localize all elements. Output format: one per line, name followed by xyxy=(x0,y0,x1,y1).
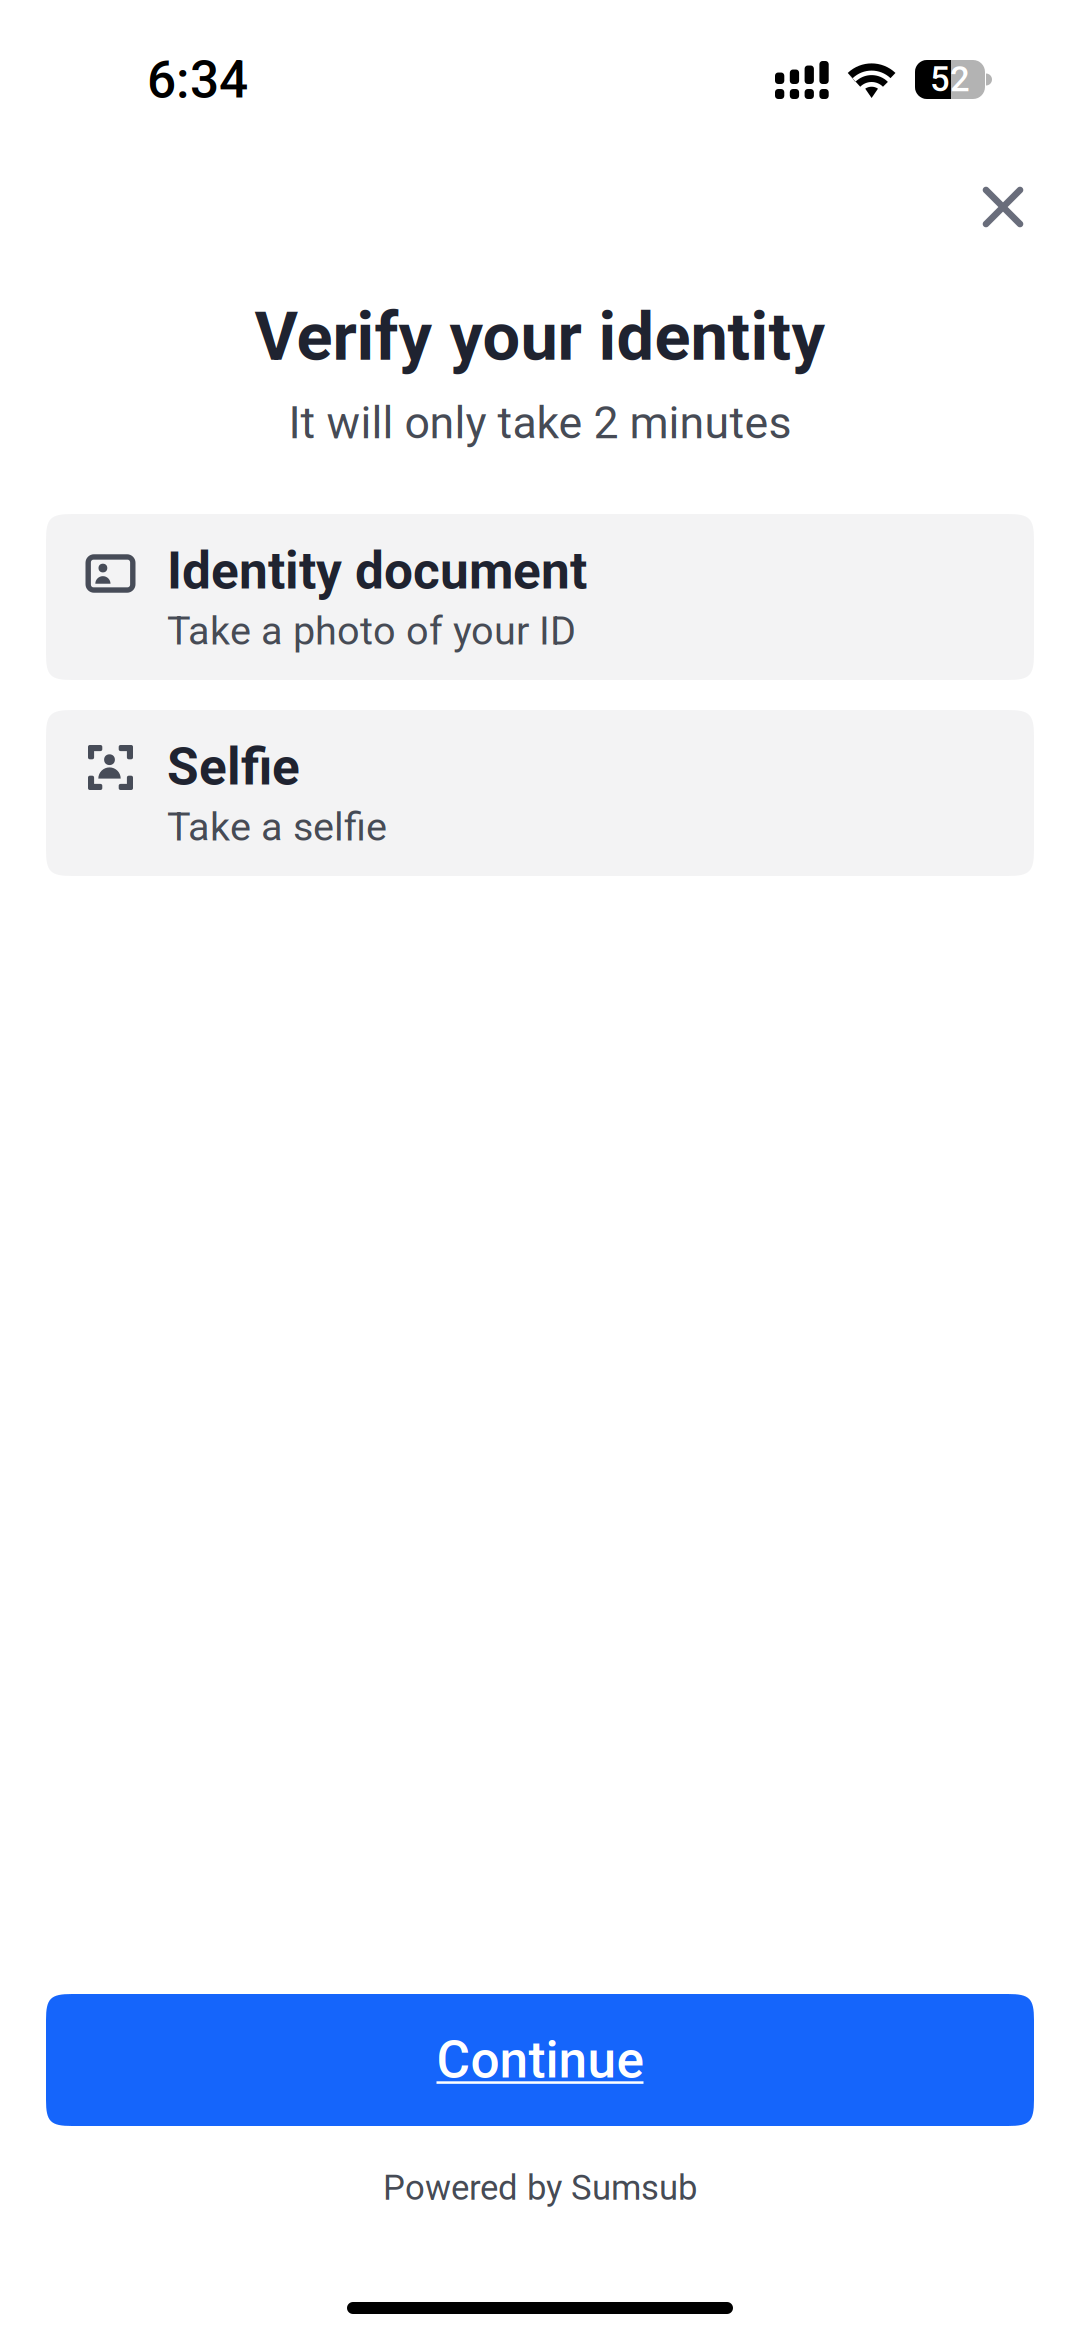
button[interactable]: Close xyxy=(959,163,1047,251)
button[interactable]: Continue xyxy=(46,1994,1034,2126)
button[interactable]: Selfie xyxy=(46,710,1034,876)
staticText: Take a photo of your ID xyxy=(167,608,576,654)
staticText: Selfie xyxy=(167,737,300,797)
staticText: Identity document xyxy=(167,541,587,601)
staticText: Verify your identity xyxy=(254,298,825,376)
staticText: 52 xyxy=(930,59,970,100)
staticText: Powered by Sumsub xyxy=(383,2168,697,2208)
staticText: Take a selfie xyxy=(167,804,387,850)
button[interactable]: Identity document xyxy=(46,514,1034,680)
staticText: It will only take 2 minutes xyxy=(288,397,791,449)
staticText: 6:34 xyxy=(147,50,248,110)
staticText: Continue xyxy=(436,2030,643,2090)
